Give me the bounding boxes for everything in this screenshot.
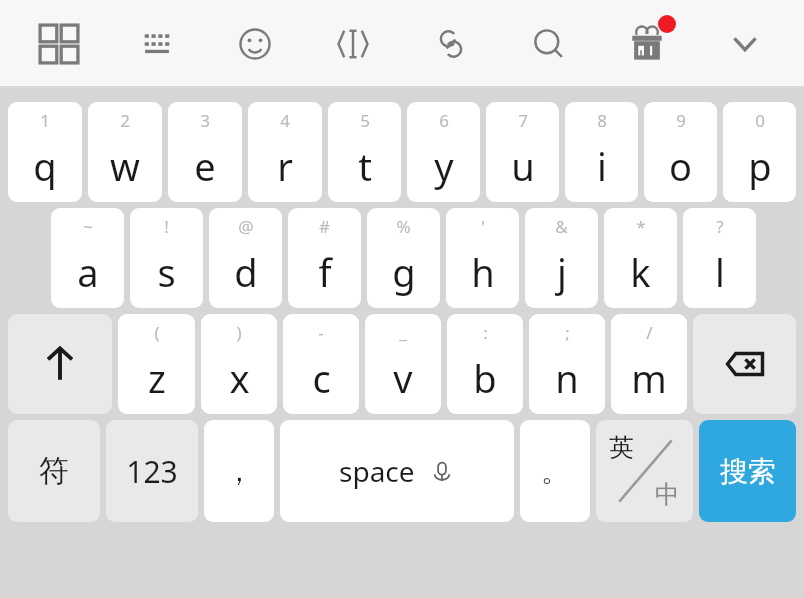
button[interactable]: 搜索 — [699, 420, 796, 522]
staticText: 符 — [39, 452, 69, 490]
button[interactable]: % — [367, 208, 440, 308]
staticText: j — [557, 246, 567, 298]
button[interactable]: ' — [446, 208, 519, 308]
staticText: v — [393, 352, 413, 404]
button[interactable]: Panels — [10, 0, 108, 88]
button[interactable]: - — [283, 314, 359, 414]
staticText: e — [194, 140, 216, 192]
staticText: 7 — [518, 109, 528, 132]
staticText: q — [33, 140, 57, 192]
staticText: m — [631, 352, 667, 404]
button[interactable]: Hide keyboard — [696, 0, 794, 88]
staticText: w — [110, 140, 140, 192]
staticText: a — [77, 246, 99, 298]
staticText: ! — [164, 215, 169, 238]
staticText: 8 — [597, 109, 607, 132]
button[interactable]: Edit text — [304, 0, 402, 88]
button[interactable]: 9 — [644, 102, 717, 202]
staticText: / — [646, 321, 653, 344]
button[interactable]: Search — [500, 0, 598, 88]
staticText: - — [318, 321, 324, 344]
button[interactable]: 1 — [8, 102, 82, 202]
button[interactable]: ( — [118, 314, 195, 414]
staticText: ， — [225, 454, 253, 489]
button[interactable]: Attachment — [402, 0, 500, 88]
staticText: b — [473, 352, 497, 404]
staticText: u — [511, 140, 535, 192]
button[interactable]: 。 — [520, 420, 590, 522]
staticText: l — [715, 246, 725, 298]
staticText: ~ — [83, 215, 93, 238]
staticText: n — [555, 352, 579, 404]
staticText: o — [669, 140, 692, 192]
button[interactable]: @ — [209, 208, 282, 308]
staticText: 6 — [439, 109, 449, 132]
button[interactable]: Keyboard — [108, 0, 206, 88]
button[interactable]: * — [604, 208, 677, 308]
button[interactable]: / — [611, 314, 687, 414]
button[interactable]: 英 — [596, 420, 693, 522]
staticText: * — [636, 215, 646, 238]
staticText: 0 — [755, 109, 765, 132]
staticText: z — [148, 352, 166, 404]
staticText: space — [339, 452, 415, 490]
staticText: x — [229, 352, 250, 404]
staticText: ( — [154, 321, 160, 344]
staticText: 5 — [360, 109, 370, 132]
staticText: d — [234, 246, 258, 298]
staticText: k — [630, 246, 651, 298]
staticText: y — [434, 140, 454, 192]
button[interactable]: 6 — [407, 102, 480, 202]
staticText: % — [396, 215, 411, 238]
staticText: h — [471, 246, 495, 298]
button[interactable]: Emoji — [206, 0, 304, 88]
button[interactable]: : — [447, 314, 523, 414]
button[interactable]: 符 — [8, 420, 100, 522]
button[interactable]: Backspace — [693, 314, 796, 414]
staticText: _ — [399, 321, 407, 344]
staticText: 英 — [609, 432, 634, 463]
button[interactable]: 5 — [328, 102, 401, 202]
staticText: & — [555, 215, 568, 238]
staticText: 1 — [40, 109, 50, 132]
staticText: ) — [236, 321, 242, 344]
button[interactable]: ! — [130, 208, 203, 308]
staticText: ; — [565, 321, 570, 344]
staticText: t — [358, 140, 372, 192]
button[interactable]: 3 — [168, 102, 242, 202]
staticText: : — [483, 321, 488, 344]
staticText: 2 — [120, 109, 130, 132]
button[interactable]: ， — [204, 420, 274, 522]
staticText: s — [157, 246, 176, 298]
staticText: g — [392, 246, 416, 298]
staticText: 3 — [200, 109, 210, 132]
staticText: 4 — [280, 109, 290, 132]
staticText: p — [748, 140, 772, 192]
button[interactable]: ~ — [51, 208, 124, 308]
button[interactable]: 4 — [248, 102, 322, 202]
button[interactable]: 0 — [723, 102, 796, 202]
staticText: c — [312, 352, 331, 404]
staticText: 搜索 — [720, 454, 776, 489]
button[interactable]: _ — [365, 314, 441, 414]
staticText: f — [318, 246, 332, 298]
button[interactable]: ? — [683, 208, 756, 308]
button[interactable]: 8 — [565, 102, 638, 202]
button[interactable]: 123 — [106, 420, 198, 522]
staticText: 中 — [655, 479, 680, 510]
button[interactable]: 7 — [486, 102, 559, 202]
button[interactable]: Gifts — [598, 0, 696, 88]
staticText: 123 — [126, 451, 178, 492]
staticText: ? — [716, 215, 724, 238]
button[interactable]: 2 — [88, 102, 162, 202]
button[interactable]: & — [525, 208, 598, 308]
staticText: 9 — [676, 109, 686, 132]
button[interactable]: ) — [201, 314, 277, 414]
button[interactable]: # — [288, 208, 361, 308]
staticText: @ — [238, 215, 254, 238]
button[interactable]: ; — [529, 314, 605, 414]
staticText: # — [319, 215, 330, 238]
button[interactable]: Shift — [8, 314, 112, 414]
staticText: 。 — [541, 454, 569, 489]
button[interactable]: space — [280, 420, 514, 522]
